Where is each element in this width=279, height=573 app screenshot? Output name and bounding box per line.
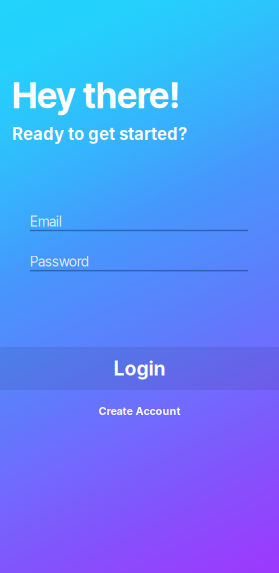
staticText: Login [113, 357, 165, 380]
staticText: Ready to get started? [12, 124, 187, 144]
staticText: Password [30, 253, 89, 270]
button[interactable]: Login [0, 347, 279, 390]
button[interactable]: Create Account [0, 403, 279, 419]
staticText: Create Account [98, 404, 180, 417]
staticText: Hey there! [12, 74, 180, 117]
staticText: Email [30, 213, 62, 230]
